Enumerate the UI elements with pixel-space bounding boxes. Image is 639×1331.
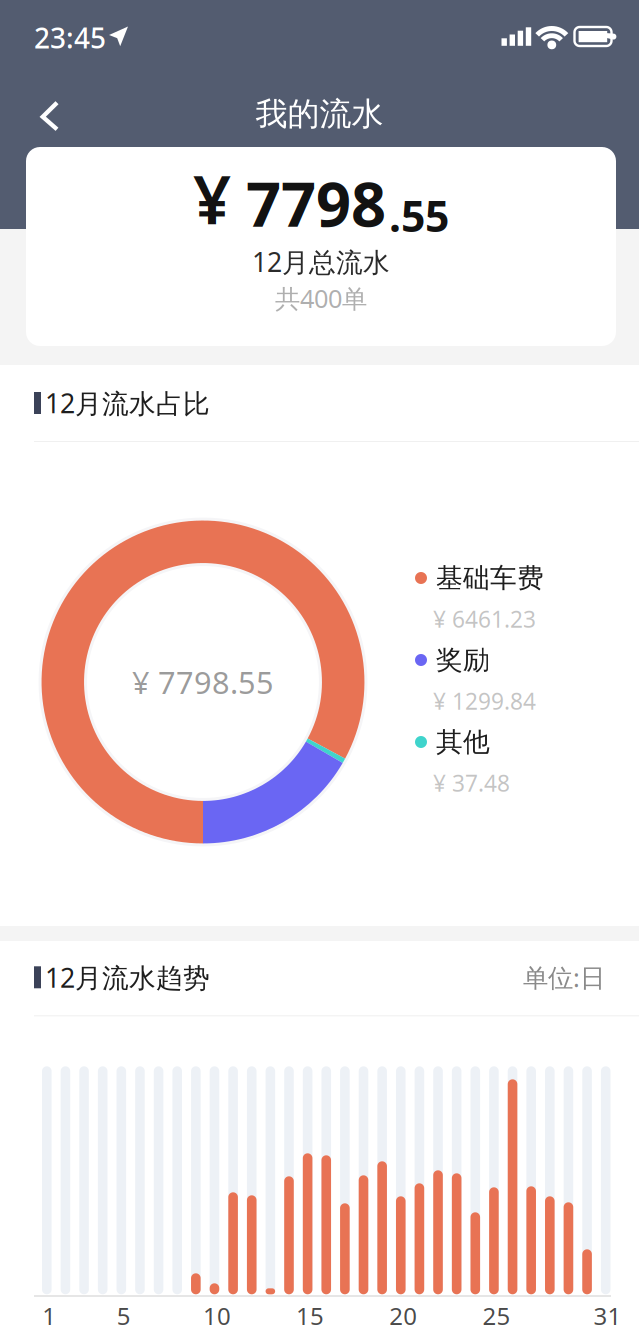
staticText: 我的流水: [255, 94, 383, 134]
staticText: 23:45: [34, 19, 106, 56]
staticText: 其他: [436, 726, 490, 758]
staticText: 5: [117, 1300, 131, 1331]
staticText: 10: [203, 1300, 231, 1331]
staticText: .55: [389, 187, 449, 244]
staticText: 12月流水占比: [45, 385, 210, 421]
staticText: 12月流水趋势: [45, 960, 210, 995]
staticText: 20: [389, 1300, 417, 1331]
staticText: 单位:日: [523, 960, 605, 994]
staticText: 1: [42, 1300, 56, 1331]
staticText: 共400单: [275, 281, 367, 315]
staticText: ¥ 1299.84: [433, 686, 536, 716]
staticText: 7798: [246, 162, 386, 244]
staticText: ¥: [193, 154, 231, 243]
staticText: 31: [594, 1300, 622, 1331]
staticText: 12月总流水: [252, 244, 390, 279]
staticText: ¥ 7798.55: [132, 662, 274, 702]
staticText: 15: [296, 1300, 324, 1331]
staticText: ¥ 37.48: [433, 768, 510, 798]
staticText: 基础车费: [436, 562, 544, 594]
button[interactable]: Back: [25, 85, 89, 149]
staticText: ¥ 6461.23: [433, 604, 536, 634]
staticText: 奖励: [436, 644, 490, 676]
staticText: 25: [482, 1300, 510, 1331]
